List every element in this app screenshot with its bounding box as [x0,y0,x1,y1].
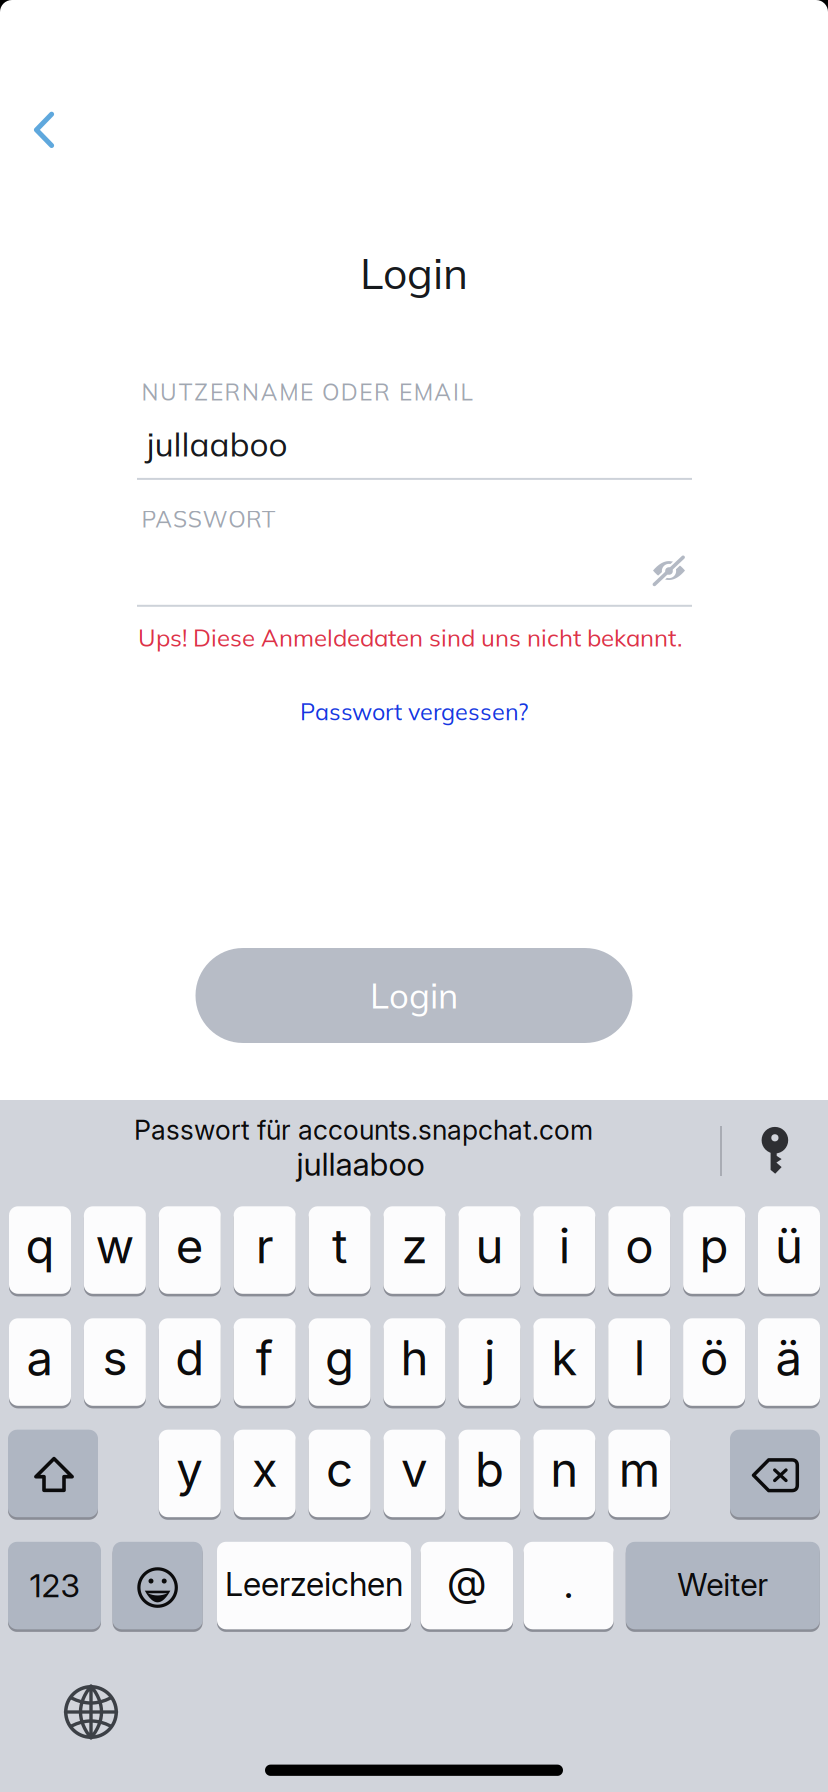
staticText: s [102,1329,127,1387]
staticText: ö [700,1329,728,1387]
button[interactable]: j [458,1315,520,1409]
staticText: m [619,1441,660,1498]
staticText: 123 [29,1566,79,1605]
button[interactable]: z [383,1203,445,1297]
staticText: t [332,1217,347,1275]
staticText: p [700,1217,729,1275]
staticText: n [550,1441,578,1498]
staticText: f [256,1329,274,1387]
staticText: ü [775,1217,803,1275]
button[interactable]: r [234,1203,296,1297]
staticText: y [176,1441,203,1498]
button[interactable]: n [533,1427,595,1520]
staticText: Passwort für accounts.snapchat.com [134,1114,593,1146]
button[interactable]: Leerzeichen [217,1539,411,1632]
button[interactable]: NUTZERNAME ODER EMAIL [137,378,692,480]
staticText: k [551,1329,577,1387]
button[interactable]: l [608,1315,670,1409]
staticText: Passwort vergessen? [300,697,528,726]
staticText: o [625,1217,653,1275]
staticText: e [176,1217,204,1275]
button[interactable]: ö [683,1315,745,1409]
button[interactable]: Shift [8,1427,98,1520]
staticText: b [475,1441,504,1498]
button[interactable]: y [159,1427,221,1520]
button[interactable]: w [84,1203,146,1297]
button[interactable]: 123 [8,1539,101,1632]
button[interactable]: m [608,1427,670,1520]
button[interactable]: f [234,1315,296,1409]
button[interactable]: s [84,1315,146,1409]
button[interactable]: p [683,1203,745,1297]
button[interactable]: ü [758,1203,820,1297]
staticText: x [252,1441,278,1498]
staticText: . [564,1559,573,1608]
staticText: u [475,1217,503,1275]
staticText: w [95,1217,134,1275]
staticText: Login [370,974,458,1017]
staticText: c [326,1441,353,1498]
button[interactable]: Weiter [626,1539,820,1632]
button[interactable]: d [159,1315,221,1409]
button[interactable]: i [533,1203,595,1297]
staticText: Login [360,246,468,300]
button[interactable]: Show password [637,542,701,600]
button[interactable]: b [458,1427,520,1520]
staticText: i [559,1217,570,1275]
button[interactable]: PASSWORT [137,505,692,607]
button[interactable]: c [309,1427,371,1520]
staticText: Weiter [677,1566,768,1603]
staticText: @ [447,1557,486,1606]
button[interactable]: h [383,1315,445,1409]
button[interactable]: u [458,1203,520,1297]
staticText: j [484,1329,495,1387]
staticText: Ups! Diese Anmeldedaten sind uns nicht b… [138,622,682,652]
button[interactable]: Delete [730,1427,820,1520]
button[interactable]: v [383,1427,445,1520]
staticText: jullaaboo [146,423,287,465]
staticText: r [256,1217,274,1275]
staticText: ä [775,1329,802,1387]
button[interactable]: @ [421,1539,513,1632]
button[interactable]: a [9,1315,71,1409]
button[interactable]: Passwort vergessen? [288,685,540,738]
button[interactable]: Emoji [113,1539,203,1632]
button[interactable]: Back [7,93,81,167]
staticText: NUTZERNAME ODER EMAIL [141,378,472,406]
button[interactable]: Login [195,948,632,1043]
staticText: d [175,1329,204,1387]
button[interactable]: g [309,1315,371,1409]
staticText: v [401,1441,428,1498]
button[interactable]: x [234,1427,296,1520]
staticText: h [400,1329,428,1387]
staticText: z [401,1217,427,1275]
button[interactable]: Passwords [760,1126,790,1174]
staticText: jullaaboo [296,1145,424,1183]
button[interactable]: k [533,1315,595,1409]
button[interactable]: e [159,1203,221,1297]
staticText: Leerzeichen [225,1564,403,1604]
staticText: a [26,1329,53,1387]
staticText: PASSWORT [141,505,276,533]
button[interactable]: ä [758,1315,820,1409]
button[interactable]: o [608,1203,670,1297]
button[interactable]: Next keyboard [61,1682,121,1742]
staticText: l [634,1329,645,1387]
button[interactable]: t [309,1203,371,1297]
button[interactable]: q [9,1203,71,1297]
staticText: g [325,1329,354,1387]
button[interactable]: . [524,1539,614,1632]
staticText: q [25,1217,54,1275]
